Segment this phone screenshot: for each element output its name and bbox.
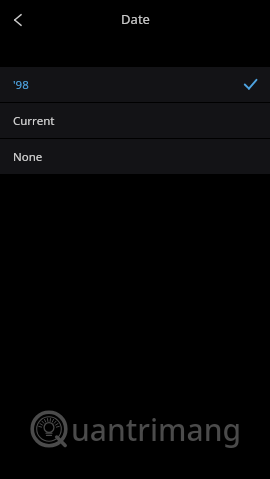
staticText: uantrimang [71, 409, 242, 450]
staticText: '98 [13, 77, 29, 93]
button[interactable]: None [0, 139, 270, 174]
staticText: Date [121, 10, 150, 28]
staticText: None [13, 149, 43, 165]
button[interactable]: '98 [0, 67, 270, 102]
button[interactable]: Back [0, 1, 38, 39]
staticText: Current [13, 113, 55, 129]
button[interactable]: Current [0, 103, 270, 138]
